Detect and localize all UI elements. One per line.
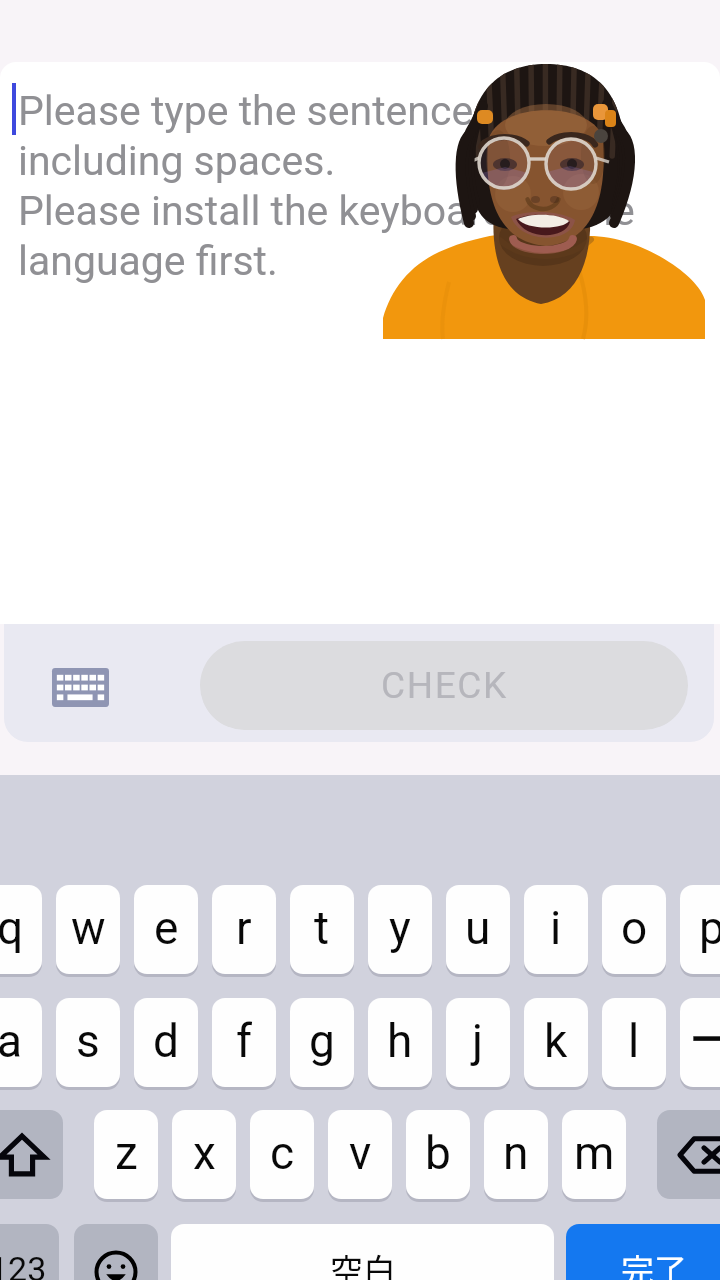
staticText: s xyxy=(76,1014,100,1068)
staticText: h xyxy=(387,1014,413,1068)
button[interactable]: r xyxy=(212,885,276,974)
staticText: 空白 xyxy=(330,1245,396,1280)
button[interactable]: c xyxy=(250,1110,314,1199)
staticText: p xyxy=(699,901,720,955)
staticText: z xyxy=(115,1126,138,1180)
button[interactable]: Backspace xyxy=(657,1110,720,1199)
staticText: n xyxy=(503,1126,529,1180)
button[interactable]: ー xyxy=(680,998,720,1087)
staticText: r xyxy=(236,901,252,955)
button[interactable]: Emoji xyxy=(74,1224,158,1280)
staticText: c xyxy=(270,1126,295,1180)
staticText: ー xyxy=(689,1012,720,1070)
staticText: b xyxy=(425,1126,451,1180)
staticText: l xyxy=(628,1014,640,1068)
button[interactable]: v xyxy=(328,1110,392,1199)
staticText: x xyxy=(193,1126,216,1180)
button[interactable]: i xyxy=(524,885,588,974)
button[interactable]: q xyxy=(0,885,42,974)
button[interactable]: x xyxy=(172,1110,236,1199)
button[interactable]: h xyxy=(368,998,432,1087)
staticText: f xyxy=(236,1014,252,1068)
staticText: 完了 xyxy=(621,1245,687,1280)
button[interactable]: CHECK xyxy=(200,641,688,730)
staticText: w xyxy=(71,901,106,955)
button[interactable]: Shift xyxy=(0,1110,63,1199)
staticText: t xyxy=(314,901,330,955)
staticText: o xyxy=(621,901,648,955)
staticText: 123 xyxy=(0,1249,47,1280)
button[interactable]: a xyxy=(0,998,42,1087)
staticText: j xyxy=(472,1014,484,1068)
staticText: v xyxy=(349,1126,372,1180)
button[interactable]: Video xyxy=(383,60,705,339)
button[interactable]: p xyxy=(680,885,720,974)
button[interactable] xyxy=(0,62,720,624)
button[interactable]: b xyxy=(406,1110,470,1199)
button[interactable]: t xyxy=(290,885,354,974)
button[interactable]: k xyxy=(524,998,588,1087)
button[interactable]: y xyxy=(368,885,432,974)
staticText: m xyxy=(574,1126,615,1180)
button[interactable]: u xyxy=(446,885,510,974)
button[interactable]: e xyxy=(134,885,198,974)
button[interactable]: o xyxy=(602,885,666,974)
staticText: y xyxy=(389,901,411,955)
button[interactable]: s xyxy=(56,998,120,1087)
button[interactable]: g xyxy=(290,998,354,1087)
button[interactable]: f xyxy=(212,998,276,1087)
button[interactable]: Switch keyboard xyxy=(52,668,109,707)
staticText: e xyxy=(154,901,179,955)
staticText: g xyxy=(309,1014,335,1068)
button[interactable]: Numbers xyxy=(0,1224,59,1280)
button[interactable]: j xyxy=(446,998,510,1087)
button[interactable]: l xyxy=(602,998,666,1087)
button[interactable]: m xyxy=(562,1110,626,1199)
staticText: d xyxy=(153,1014,179,1068)
staticText: i xyxy=(550,901,562,955)
button[interactable]: 完了 xyxy=(566,1224,720,1280)
staticText: a xyxy=(0,1014,23,1068)
button[interactable]: w xyxy=(56,885,120,974)
staticText: q xyxy=(0,901,24,955)
staticText: u xyxy=(465,901,491,955)
staticText: Please type the sentence, including spac… xyxy=(18,87,646,285)
button[interactable]: d xyxy=(134,998,198,1087)
button[interactable]: z xyxy=(94,1110,158,1199)
button[interactable]: n xyxy=(484,1110,548,1199)
button[interactable]: 空白 xyxy=(171,1224,554,1280)
staticText: CHECK xyxy=(381,664,508,707)
staticText: k xyxy=(544,1014,568,1068)
